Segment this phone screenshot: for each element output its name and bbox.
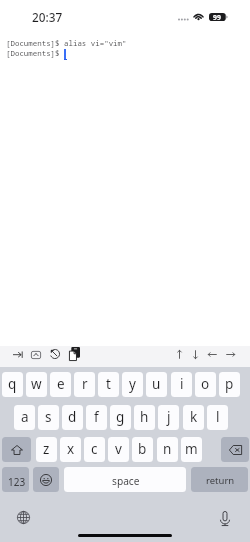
staticText: l xyxy=(216,408,220,426)
staticText: y xyxy=(129,375,136,393)
staticText: d xyxy=(68,408,77,426)
button[interactable]: r xyxy=(74,372,95,397)
staticText: 20:37 xyxy=(32,9,63,25)
staticText: s xyxy=(45,408,52,426)
button[interactable]: Arrow Left xyxy=(205,346,220,363)
button[interactable]: Control xyxy=(28,346,44,364)
button[interactable]: l xyxy=(207,405,228,430)
staticText: f xyxy=(94,408,99,426)
staticText: i xyxy=(180,375,184,393)
staticText: v xyxy=(115,440,122,458)
button[interactable]: v xyxy=(108,437,129,462)
button[interactable]: c xyxy=(84,437,105,462)
button[interactable]: j xyxy=(158,405,179,430)
button[interactable]: return xyxy=(191,467,248,492)
staticText: w xyxy=(31,375,42,393)
staticText: p xyxy=(225,375,234,393)
staticText: m xyxy=(185,440,198,458)
staticText: 123 xyxy=(8,475,26,489)
button[interactable]: i xyxy=(171,372,192,397)
staticText: return xyxy=(206,474,235,487)
button[interactable]: Arrow Down xyxy=(188,346,203,363)
button[interactable]: Switch keyboard xyxy=(15,509,32,526)
button[interactable]: w xyxy=(26,372,47,397)
staticText: a xyxy=(21,408,29,426)
button[interactable]: f xyxy=(86,405,107,430)
staticText: t xyxy=(106,375,111,393)
staticText: h xyxy=(140,408,149,426)
staticText: x xyxy=(67,440,75,458)
button[interactable]: Arrow Up xyxy=(172,346,187,363)
button[interactable]: b xyxy=(132,437,153,462)
button[interactable]: m xyxy=(181,437,202,462)
button[interactable]: n xyxy=(157,437,178,462)
staticText: n xyxy=(163,440,172,458)
staticText: 99 xyxy=(213,13,221,22)
button[interactable]: Paste xyxy=(66,343,83,365)
staticText: u xyxy=(152,375,161,393)
button[interactable]: t xyxy=(98,372,119,397)
button[interactable]: Backspace xyxy=(221,437,249,462)
button[interactable]: k xyxy=(183,405,204,430)
staticText: space xyxy=(112,474,140,488)
staticText: o xyxy=(201,375,210,393)
button[interactable]: x xyxy=(60,437,81,462)
staticText: g xyxy=(116,408,125,426)
staticText: b xyxy=(138,440,147,458)
button[interactable]: Tab xyxy=(10,346,26,363)
staticText: z xyxy=(43,440,50,458)
staticText: [Documents]$ xyxy=(6,48,60,58)
button[interactable]: u xyxy=(146,372,167,397)
button[interactable]: Emoji xyxy=(33,467,59,492)
button[interactable]: q xyxy=(2,372,23,397)
button[interactable]: Arrow Right xyxy=(223,346,238,363)
staticText: [Documents]$ alias vi="vim" xyxy=(6,38,127,48)
button[interactable]: g xyxy=(110,405,131,430)
staticText: r xyxy=(82,375,88,393)
staticText: j xyxy=(167,408,171,426)
button[interactable]: p xyxy=(219,372,240,397)
staticText: c xyxy=(91,440,98,458)
button[interactable]: h xyxy=(134,405,155,430)
staticText: q xyxy=(8,375,17,393)
button[interactable]: s xyxy=(38,405,59,430)
button[interactable]: e xyxy=(50,372,71,397)
staticText: k xyxy=(190,408,198,426)
button[interactable]: space xyxy=(64,467,186,492)
button[interactable]: 123 xyxy=(2,467,29,492)
button[interactable]: Shift xyxy=(2,437,31,462)
button[interactable]: o xyxy=(195,372,216,397)
button[interactable]: z xyxy=(36,437,57,462)
button[interactable]: a xyxy=(14,405,35,430)
button[interactable]: Undo xyxy=(47,345,63,363)
button[interactable]: d xyxy=(62,405,83,430)
button[interactable]: y xyxy=(122,372,143,397)
button[interactable]: Dictate xyxy=(216,507,234,527)
staticText: e xyxy=(57,375,65,393)
